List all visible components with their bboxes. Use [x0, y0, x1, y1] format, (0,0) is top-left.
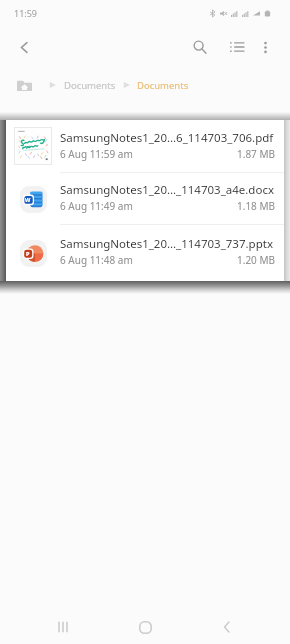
button[interactable]: Recents [42, 606, 84, 644]
staticText: SamsungNotes1_20…6_114703_706.pdf [60, 130, 274, 146]
button[interactable]: More options [250, 29, 280, 65]
button[interactable]: Home [124, 606, 166, 644]
staticText: 11:59 [14, 7, 38, 19]
button[interactable]: Home folder [17, 78, 32, 93]
button[interactable]: Search [177, 29, 223, 65]
button[interactable]: View as list [223, 29, 250, 65]
staticText: Documents [137, 79, 189, 92]
staticText: SamsungNotes1_20…_114703_737.pptx [60, 236, 273, 252]
staticText: 1.20 MB [237, 253, 276, 267]
button[interactable]: P [6, 225, 284, 280]
staticText: SamsungNotes1_20…_114703_a4e.docx [60, 182, 275, 198]
staticText: 6 Aug 11:59 am [60, 147, 133, 161]
button[interactable]: SamsungNotes1_20…6_114703_706.pdf [6, 120, 284, 172]
button[interactable]: Back [206, 606, 248, 644]
staticText: P [26, 250, 30, 257]
staticText: Documents [64, 79, 116, 92]
staticText: 1.87 MB [237, 147, 276, 161]
staticText: W [25, 196, 31, 203]
button[interactable]: W [6, 173, 284, 224]
button[interactable]: Back [7, 30, 41, 64]
staticText: 6 Aug 11:49 am [60, 199, 133, 213]
staticText: 1.18 MB [237, 199, 276, 213]
staticText: 6 Aug 11:48 am [60, 253, 133, 267]
